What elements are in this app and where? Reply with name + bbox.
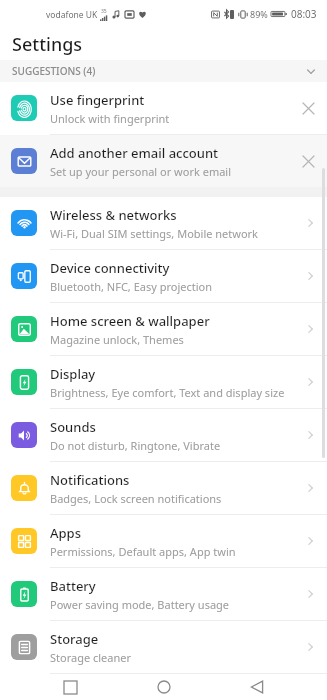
button[interactable]: Recent apps [46,674,94,700]
staticText: Permissions, Default apps, App twin [50,544,236,559]
button[interactable]: Storage [0,621,327,673]
staticText: Power saving mode, Battery usage [50,597,230,612]
button[interactable]: Display [0,356,327,408]
button[interactable]: Back [233,674,281,700]
button[interactable]: Notifications [0,462,327,514]
button[interactable]: Home screen & wallpaper [0,303,327,355]
button[interactable]: Use fingerprint [0,82,327,134]
staticText: Settings [12,32,83,57]
staticText: Brightness, Eye comfort, Text and displa… [50,385,285,400]
staticText: Bluetooth, NFC, Easy projection [50,279,213,294]
staticText: Badges, Lock screen notifications [50,491,222,506]
staticText: Storage [50,630,99,648]
staticText: SUGGESTIONS (4) [12,64,96,78]
staticText: Unlock with fingerprint [50,111,170,126]
staticText: Add another email account [50,144,219,162]
staticText: Sounds [50,418,96,436]
staticText: Display [50,365,96,383]
button[interactable]: Device connectivity [0,250,327,302]
staticText: Wi-Fi, Dual SIM settings, Mobile network [50,226,258,241]
button[interactable]: Wireless & networks [0,197,327,249]
staticText: 08:03 [291,7,317,21]
staticText: vodafone UK [46,9,98,21]
button[interactable]: SUGGESTIONS (4) [0,60,327,82]
staticText: Battery [50,577,96,595]
staticText: Set up your personal or work email [50,164,232,179]
button[interactable]: Sounds [0,409,327,461]
button[interactable]: Battery [0,568,327,620]
staticText: Home screen & wallpaper [50,312,210,330]
staticText: Do not disturb, Ringtone, Vibrate [50,438,221,453]
staticText: Magazine unlock, Themes [50,332,184,347]
staticText: Use fingerprint [50,91,145,109]
staticText: 35 [101,8,107,15]
button[interactable]: Apps [0,515,327,567]
staticText: Notifications [50,471,130,489]
staticText: Apps [50,524,81,542]
staticText: Device connectivity [50,259,170,277]
staticText: Wireless & networks [50,206,177,224]
button[interactable]: Dismiss Add another email account [293,146,323,176]
button[interactable]: Add another email account [0,135,327,187]
staticText: 89% [250,8,268,20]
staticText: Storage cleaner [50,650,132,665]
button[interactable]: Dismiss Use fingerprint [293,93,323,123]
button[interactable]: Home [140,674,188,700]
